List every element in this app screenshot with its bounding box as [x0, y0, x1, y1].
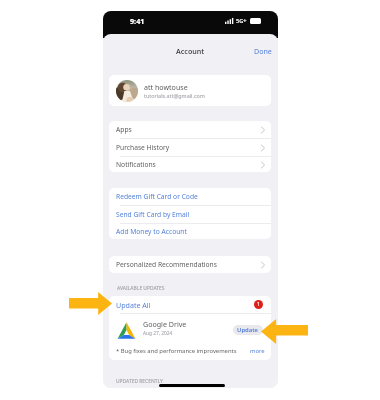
other: Highlight Update button [261, 319, 308, 344]
button[interactable]: Update All [109, 296, 271, 313]
button[interactable]: Purchase History [109, 139, 271, 156]
staticText: 9:41 [130, 16, 145, 26]
staticText: Update [237, 326, 259, 334]
staticText: Update All [116, 300, 151, 310]
staticText: Google Drive [143, 319, 187, 329]
staticText: Send Gift Card by Email [116, 210, 190, 219]
staticText: Aug 27, 2024 [143, 330, 173, 337]
staticText: more [250, 347, 265, 355]
staticText: AVAILABLE UPDATES [117, 285, 165, 292]
staticText: UPDATED RECENTLY [116, 378, 163, 385]
staticText: att howtouse [144, 82, 188, 92]
staticText: Notifications [116, 160, 156, 169]
button[interactable]: Notifications [109, 157, 271, 172]
button[interactable]: Update [233, 325, 263, 335]
button[interactable]: Apps [109, 121, 271, 138]
staticText: 1 [257, 301, 260, 308]
button[interactable]: att howtouse [109, 75, 271, 106]
other: Highlight Update All [69, 292, 112, 315]
staticText: Apps [116, 125, 132, 134]
button[interactable]: more [250, 347, 265, 355]
staticText: Personalized Recommendations [116, 260, 217, 269]
staticText: 5G+ [236, 17, 247, 25]
staticText: Purchase History [116, 143, 170, 152]
staticText: Add Money to Account [116, 227, 187, 236]
button[interactable]: Redeem Gift Card or Code [109, 188, 271, 205]
staticText: * Bug fixes and performance improvements [116, 347, 237, 355]
button[interactable]: Personalized Recommendations [109, 256, 271, 273]
button[interactable]: Add Money to Account [109, 224, 271, 239]
button[interactable]: Done [248, 43, 278, 59]
button[interactable]: Send Gift Card by Email [109, 206, 271, 223]
staticText: tutorials.att@gmail.com [144, 92, 205, 99]
staticText: Redeem Gift Card or Code [116, 192, 198, 201]
staticText: Done [254, 46, 272, 56]
staticText: Account [176, 46, 205, 56]
